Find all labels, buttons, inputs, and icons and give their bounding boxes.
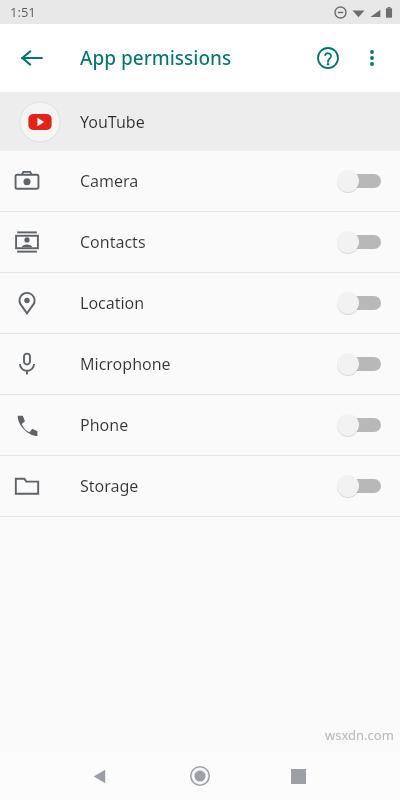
button[interactable]: Microphone [0,334,400,394]
button[interactable]: Help [306,36,350,80]
button[interactable]: Camera permission toggle [328,157,390,205]
button[interactable]: Storage permission toggle [328,462,390,510]
staticText: Contacts [80,231,146,253]
button[interactable]: Recent apps [276,754,320,798]
button[interactable]: Phone permission toggle [328,401,390,449]
button[interactable]: Camera [0,151,400,211]
staticText: YouTube [80,111,145,133]
staticText: 1:51 [10,3,36,21]
button[interactable]: Location [0,273,400,333]
button[interactable]: Contacts [0,212,400,272]
button[interactable]: YouTube [0,92,400,151]
button[interactable]: Back [10,36,54,80]
staticText: Camera [80,170,139,192]
button[interactable]: Contacts permission toggle [328,218,390,266]
staticText: Phone [80,414,129,436]
button[interactable]: Storage [0,456,400,516]
button[interactable]: Home [178,754,222,798]
button[interactable]: Back [78,754,122,798]
staticText: wsxdn.com [325,726,394,744]
staticText: Microphone [80,353,171,375]
button[interactable]: Microphone permission toggle [328,340,390,388]
button[interactable]: Phone [0,395,400,455]
button[interactable]: Location permission toggle [328,279,390,327]
button[interactable]: More options [350,36,394,80]
staticText: Location [80,292,145,314]
staticText: Storage [80,475,139,497]
staticText: App permissions [80,45,232,71]
